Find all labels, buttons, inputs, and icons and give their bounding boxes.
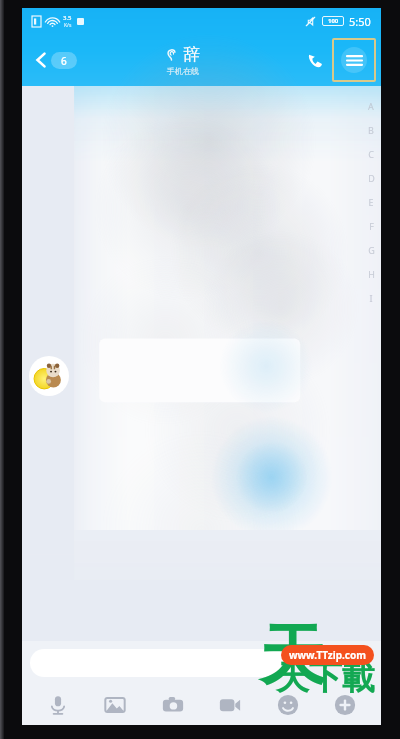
staticText: E xyxy=(368,196,374,208)
button[interactable]: Voice message xyxy=(36,685,80,725)
staticText: 100 xyxy=(328,17,339,25)
button[interactable]: H xyxy=(364,262,378,286)
button[interactable]: More xyxy=(323,685,367,725)
staticText: 6 xyxy=(61,54,67,68)
staticText: 3.5 xyxy=(63,14,72,22)
button[interactable]: E xyxy=(364,190,378,214)
button[interactable]: Back, 6 unread xyxy=(28,46,83,74)
button[interactable]: Avatar xyxy=(29,356,69,396)
button[interactable]: F xyxy=(364,214,378,238)
button[interactable]: C xyxy=(364,142,378,166)
staticText: 手机在线 xyxy=(167,66,199,76)
staticText: F xyxy=(369,220,374,232)
staticText: 天下載 xyxy=(276,657,375,699)
staticText: www.TTzip.com xyxy=(289,648,366,662)
staticText: I xyxy=(369,292,373,304)
staticText: C xyxy=(368,148,374,160)
staticText: B xyxy=(368,124,374,136)
button[interactable]: A xyxy=(364,94,378,118)
staticText: G xyxy=(368,244,375,256)
button[interactable]: Video xyxy=(208,685,252,725)
button[interactable]: Call xyxy=(298,43,332,77)
button[interactable]: B xyxy=(364,118,378,142)
button[interactable]: Emoji xyxy=(266,685,310,725)
staticText: A xyxy=(368,100,374,112)
button[interactable]: D xyxy=(364,166,378,190)
staticText: 5:50 xyxy=(349,14,371,29)
staticText: K/s xyxy=(64,22,72,29)
button[interactable]: Message input xyxy=(30,649,293,677)
button[interactable]: I xyxy=(364,286,378,310)
staticText: 辞 xyxy=(183,44,200,65)
button[interactable]: G xyxy=(364,238,378,262)
staticText: H xyxy=(368,268,375,280)
button[interactable]: Gallery xyxy=(93,685,137,725)
staticText: D xyxy=(368,172,375,184)
button[interactable]: Camera xyxy=(151,685,195,725)
staticText: 天 xyxy=(259,614,325,697)
button[interactable]: Menu xyxy=(332,38,376,82)
